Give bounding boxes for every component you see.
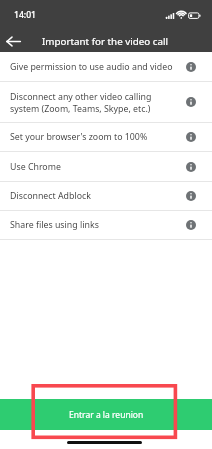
button[interactable]: Set your browser's zoom to 100% [0,123,212,151]
button[interactable]: Info [186,191,196,201]
button[interactable]: Info [186,97,196,107]
staticText: Entrar a la reunion [69,409,144,421]
button[interactable]: Info [186,132,196,142]
button[interactable]: Disconnect Adblock [0,182,212,210]
staticText: Share files using links [10,219,182,231]
button[interactable]: Share files using links [0,211,212,239]
staticText: Give permission to use audio and video [10,61,182,73]
staticText: Important for the video call [42,35,168,48]
button[interactable]: Give permission to use audio and video [0,52,212,81]
staticText: Disconnect Adblock [10,190,182,202]
staticText: 14:01 [14,9,37,21]
button[interactable]: Info [186,62,196,72]
staticText: Use Chrome [10,161,182,173]
staticText: Disconnect any other video calling syste… [10,91,182,114]
button[interactable]: Use Chrome [0,152,212,181]
button[interactable]: Back [0,30,26,52]
button[interactable]: Entrar a la reunion [0,399,212,430]
button[interactable]: Info [186,162,196,172]
button[interactable]: Info [186,220,196,230]
staticText: Set your browser's zoom to 100% [10,131,182,143]
button[interactable]: Disconnect any other video calling syste… [0,82,212,122]
